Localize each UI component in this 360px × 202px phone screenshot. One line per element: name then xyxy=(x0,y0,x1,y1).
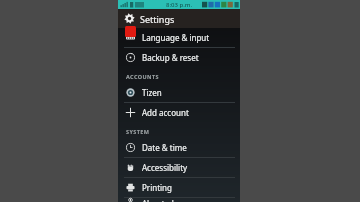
button[interactable]: Date & time xyxy=(118,138,240,157)
staticText: Language & input xyxy=(142,32,210,43)
staticText: Add account xyxy=(142,107,189,118)
button[interactable]: Printing xyxy=(118,178,240,197)
button[interactable]: Accessibility xyxy=(118,158,240,177)
staticText: Date & time xyxy=(142,142,187,153)
staticText: Accessibility xyxy=(142,162,188,173)
staticText: 8:03 p.m. xyxy=(166,1,193,9)
button[interactable]: Tizen xyxy=(118,83,240,102)
staticText: About phone xyxy=(142,198,191,202)
staticText: Settings xyxy=(140,13,175,25)
staticText: Tizen xyxy=(142,87,162,98)
staticText: Printing xyxy=(142,182,172,193)
button[interactable]: Settings xyxy=(118,9,240,28)
button[interactable]: Add account xyxy=(118,103,240,122)
other: Settings xyxy=(124,13,135,24)
staticText: ACCOUNTS xyxy=(126,73,159,80)
button[interactable]: Backup & reset xyxy=(118,48,240,67)
staticText: Backup & reset xyxy=(142,52,199,63)
button[interactable]: About phone xyxy=(118,198,240,202)
button[interactable]: Language & input xyxy=(118,28,240,47)
staticText: SYSTEM xyxy=(126,128,150,135)
